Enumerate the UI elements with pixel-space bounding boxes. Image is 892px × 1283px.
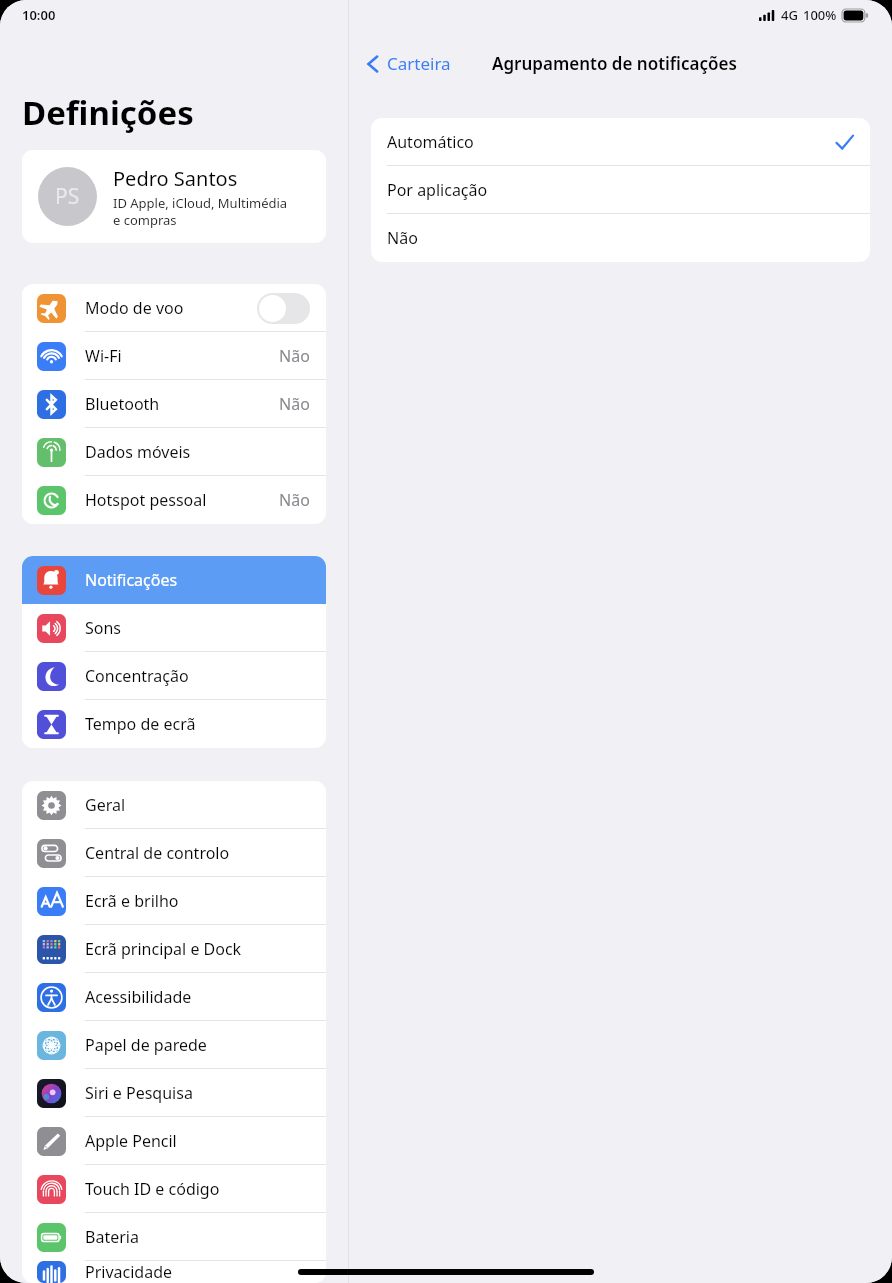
button[interactable]: Carteira (361, 48, 457, 79)
button[interactable]: Apple Pencil (22, 1117, 326, 1165)
staticText: Privacidade (85, 1261, 173, 1283)
staticText: ID Apple, iCloud, Multimédia e compras (113, 194, 288, 229)
button[interactable]: Wi-Fi (22, 332, 326, 380)
button[interactable]: Dados móveis (22, 428, 326, 476)
button[interactable]: Ecrã principal e Dock (22, 925, 326, 973)
staticText: Sons (85, 617, 122, 639)
button[interactable]: Tempo de ecrã (22, 700, 326, 748)
button[interactable]: Touch ID e código (22, 1165, 326, 1213)
staticText: Dados móveis (85, 441, 191, 463)
staticText: Touch ID e código (85, 1178, 220, 1200)
button[interactable]: Siri e Pesquisa (22, 1069, 326, 1117)
button[interactable]: PS (22, 150, 326, 243)
staticText: Definições (22, 90, 194, 135)
button[interactable]: Geral (22, 781, 326, 829)
staticText: Por aplicação (387, 179, 488, 201)
staticText: Não (279, 393, 310, 415)
staticText: 4G (781, 6, 798, 24)
button[interactable]: Bateria (22, 1213, 326, 1261)
button[interactable]: Central de controlo (22, 829, 326, 877)
staticText: Ecrã principal e Dock (85, 938, 242, 960)
staticText: 10:00 (22, 6, 56, 24)
staticText: Geral (85, 794, 126, 816)
staticText: Bateria (85, 1226, 139, 1248)
button[interactable]: Sons (22, 604, 326, 652)
staticText: Apple Pencil (85, 1130, 177, 1152)
staticText: Agrupamento de notificações (492, 52, 737, 75)
staticText: Automático (387, 131, 474, 153)
button[interactable]: Não (371, 214, 870, 262)
staticText: Modo de voo (85, 297, 184, 319)
button[interactable]: Por aplicação (371, 166, 870, 214)
staticText: Notificações (85, 569, 178, 591)
button[interactable]: Privacidade (22, 1261, 326, 1283)
staticText: Não (279, 489, 310, 511)
staticText: Siri e Pesquisa (85, 1082, 193, 1104)
button[interactable]: Modo de voo (257, 293, 310, 324)
staticText: Acessibilidade (85, 986, 192, 1008)
button[interactable]: Ecrã e brilho (22, 877, 326, 925)
staticText: Concentração (85, 665, 189, 687)
button[interactable]: Automático (371, 118, 870, 166)
staticText: PS (55, 182, 80, 211)
staticText: 100% (803, 6, 837, 24)
button[interactable]: Papel de parede (22, 1021, 326, 1069)
staticText: Wi-Fi (85, 345, 122, 367)
staticText: Tempo de ecrã (85, 713, 196, 735)
staticText: Não (387, 227, 418, 249)
staticText: Não (279, 345, 310, 367)
button[interactable]: Notificações (22, 556, 326, 604)
staticText: Pedro Santos (113, 165, 238, 192)
staticText: Papel de parede (85, 1034, 207, 1056)
button[interactable]: Bluetooth (22, 380, 326, 428)
button[interactable]: Concentração (22, 652, 326, 700)
staticText: Ecrã e brilho (85, 890, 179, 912)
staticText: Central de controlo (85, 842, 230, 864)
button[interactable]: Acessibilidade (22, 973, 326, 1021)
button[interactable]: Modo de voo (22, 284, 326, 332)
staticText: Hotspot pessoal (85, 489, 207, 511)
button[interactable]: Hotspot pessoal (22, 476, 326, 524)
staticText: Bluetooth (85, 393, 160, 415)
staticText: Carteira (387, 52, 451, 75)
